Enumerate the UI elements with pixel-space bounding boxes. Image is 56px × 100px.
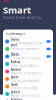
staticText: 3 items still pending: [11, 57, 41, 60]
staticText: Delivered a moment ago: [11, 47, 39, 54]
staticText: Drafts: [11, 53, 19, 56]
staticText: Trash: [11, 83, 18, 86]
staticText: Archive: [11, 60, 21, 64]
staticText: Labels: [11, 90, 20, 94]
staticText: Inbox: [11, 38, 19, 41]
staticText: Smart: [3, 4, 31, 16]
staticText: Favourite conversations: [11, 72, 42, 75]
staticText: 12 new messages today: [11, 42, 42, 45]
staticText: Key Messages: [5, 32, 24, 35]
staticText: Filtered automatically: [11, 79, 39, 83]
staticText: Kept for thirty days: [11, 87, 37, 90]
staticText: Settings: [11, 98, 22, 100]
staticText: Organize & share everything: [3, 16, 41, 19]
staticText: Sent: [11, 44, 17, 47]
staticText: Spam: [11, 75, 19, 79]
staticText: Starred: [11, 68, 21, 71]
staticText: Manage your folders: [11, 94, 39, 98]
staticText: Older conversations: [11, 64, 38, 68]
